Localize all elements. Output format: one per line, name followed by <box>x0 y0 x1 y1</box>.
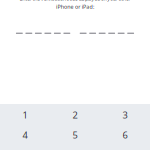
staticText: 2 <box>72 109 77 121</box>
staticText: 3 <box>122 109 127 121</box>
staticText: iPhone or iPad: <box>56 3 94 10</box>
staticText: 6 <box>122 129 127 141</box>
staticText: Enter the verification code displayed on… <box>19 0 130 2</box>
button[interactable]: 3 <box>100 105 150 125</box>
button[interactable]: 1 <box>0 105 50 125</box>
button[interactable]: 5 <box>50 125 100 145</box>
button[interactable]: 2 <box>50 105 100 125</box>
staticText: 1 <box>22 109 27 121</box>
staticText: 5 <box>72 129 77 141</box>
staticText: 4 <box>22 129 27 141</box>
button[interactable]: 4 <box>0 125 50 145</box>
button[interactable]: 6 <box>100 125 150 145</box>
